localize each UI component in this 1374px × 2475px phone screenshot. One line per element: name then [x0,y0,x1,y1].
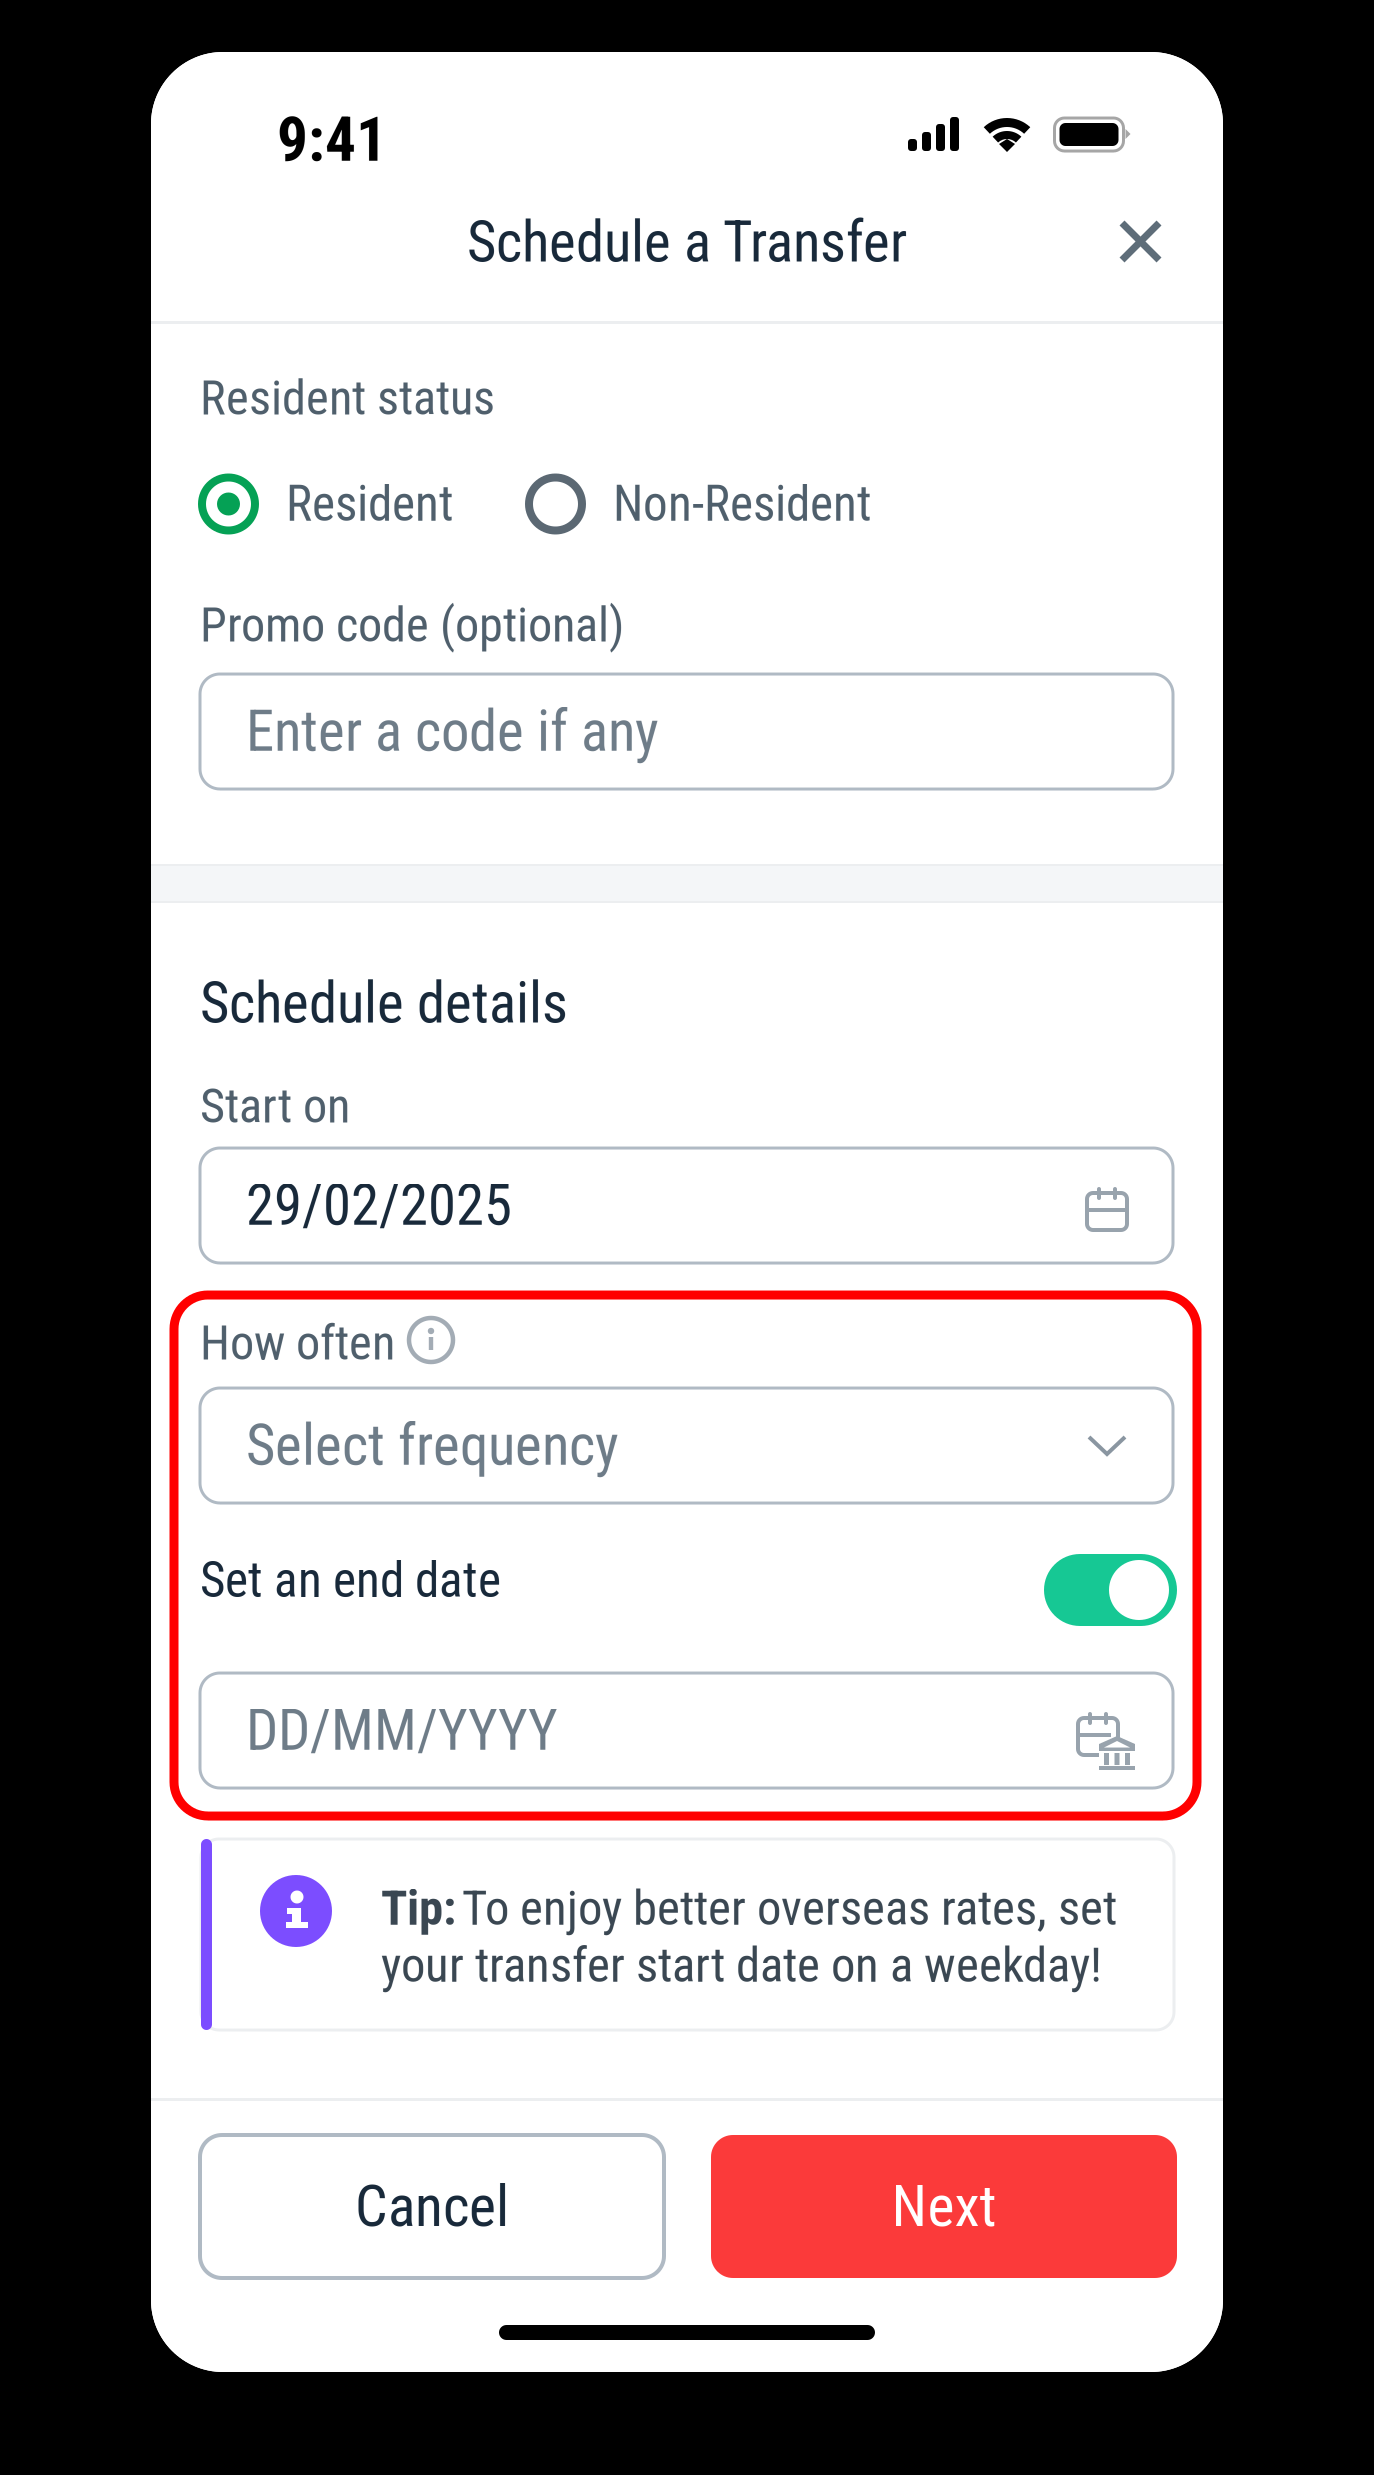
staticText: 29/02/2025 [246,1172,512,1239]
staticText: Tip: [381,1880,467,1937]
button[interactable]: Next [711,2135,1177,2278]
staticText: Schedule details [200,970,568,1036]
staticText: your transfer start date on a weekday! [381,1937,1102,1994]
button[interactable]: Non-Resident [529,476,889,532]
staticText: How often [200,1315,395,1371]
staticText: Resident [286,475,454,533]
staticText: To enjoy better overseas rates, set [462,1880,1117,1937]
staticText: DD/MM/YYYY [246,1697,558,1764]
button[interactable]: Set an end date [1044,1554,1177,1626]
staticText: 9:41 [277,104,387,176]
staticText: Set an end date [200,1551,501,1609]
staticText: Enter a code if any [246,698,659,765]
staticText: Promo code (optional) [200,597,624,653]
staticText: Non-Resident [613,475,872,533]
button[interactable]: Close [1101,202,1180,281]
button[interactable]: Cancel [200,2135,664,2278]
staticText: Next [891,2173,996,2240]
staticText: Start on [200,1078,350,1134]
staticText: Schedule a Transfer [467,209,907,275]
button[interactable]: Resident [202,476,462,532]
staticText: Cancel [355,2173,509,2240]
staticText: Resident status [200,370,495,426]
staticText: Select frequency [246,1412,619,1479]
